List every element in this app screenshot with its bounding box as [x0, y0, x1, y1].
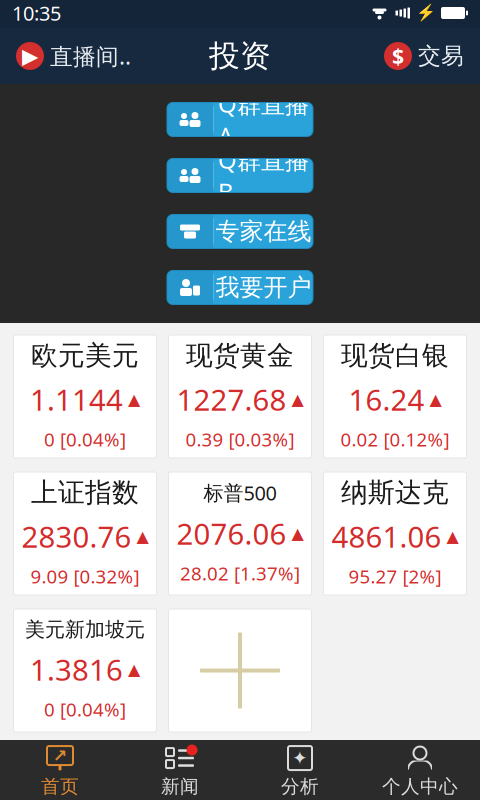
button[interactable]: 个人中心 [360, 742, 480, 800]
button[interactable]: 现货黄金 [168, 335, 311, 458]
staticText: 纳斯达克 [341, 476, 449, 509]
staticText: 0.02 [0.12%] [340, 427, 449, 452]
staticText: ▲ [136, 527, 148, 546]
staticText: 交易 [418, 42, 464, 70]
button[interactable]: 欧元美元 [13, 335, 156, 458]
staticText: 2076.06 [176, 514, 286, 553]
button[interactable]: $ [380, 36, 468, 76]
staticText: 1.3816 [30, 650, 123, 689]
button[interactable]: Q群直播B [167, 158, 313, 192]
staticText: ▲ [291, 390, 303, 409]
staticText: ▲ [128, 660, 140, 678]
staticText: 2830.76 [21, 517, 131, 556]
staticText: 95.27 [2%] [348, 564, 441, 589]
button[interactable]: Q群直播A [167, 102, 313, 136]
button[interactable]: 专家在线 [167, 214, 313, 248]
staticText: 0 [0.04%] [44, 427, 126, 452]
button[interactable]: 上证指数 [13, 472, 156, 595]
staticText: 分析 [281, 775, 319, 798]
staticText: 28.02 [1.37%] [180, 561, 300, 586]
staticText: ⚡ [416, 4, 436, 22]
button[interactable]: 美元新加坡元 [13, 609, 156, 732]
button[interactable]: ✦ [240, 742, 360, 800]
staticText: $ [392, 42, 404, 70]
staticText: 我要开户 [215, 273, 311, 302]
staticText: 投资 [209, 37, 271, 75]
button[interactable]: 现货白银 [323, 335, 466, 458]
staticText: 现货黄金 [186, 339, 294, 372]
staticText: 专家在线 [215, 217, 311, 246]
staticText: ▲ [291, 524, 303, 542]
staticText: Q群直播A [218, 88, 309, 151]
staticText: 0 [0.04%] [44, 697, 126, 722]
button[interactable]: 标普500 [168, 472, 311, 595]
staticText: Q群直播B [218, 144, 309, 207]
staticText: 0.39 [0.03%] [185, 427, 294, 452]
staticText: 现货白银 [341, 339, 449, 372]
button[interactable]: 新闻 [120, 742, 240, 800]
staticText: 标普500 [203, 479, 276, 506]
staticText: 1227.68 [176, 380, 286, 419]
button[interactable]: 纳斯达克 [323, 472, 466, 595]
staticText: 新闻 [161, 775, 199, 798]
staticText: 上证指数 [31, 476, 139, 509]
staticText: 4861.06 [331, 517, 441, 556]
staticText: ▲ [429, 390, 441, 409]
staticText: 个人中心 [382, 775, 458, 798]
staticText: ✦ [292, 747, 308, 769]
button[interactable]: ▶ [12, 35, 135, 77]
staticText: 美元新加坡元 [25, 617, 145, 642]
staticText: ▲ [446, 527, 458, 546]
button[interactable]: 我要开户 [167, 270, 313, 304]
staticText: 1.1144 [30, 380, 123, 419]
staticText: 欧元美元 [31, 339, 139, 372]
button[interactable]: ↗ [0, 742, 120, 800]
staticText: 10:35 [12, 0, 61, 26]
staticText: 9.09 [0.32%] [30, 564, 139, 589]
staticText: 16.24 [348, 380, 424, 419]
staticText: 直播间.. [50, 41, 131, 71]
staticText: ↗ [52, 746, 67, 765]
button[interactable]: 添加自选 [168, 609, 311, 732]
staticText: ▲ [128, 390, 140, 409]
staticText: 首页 [41, 775, 79, 798]
staticText: ▶ [22, 44, 38, 68]
